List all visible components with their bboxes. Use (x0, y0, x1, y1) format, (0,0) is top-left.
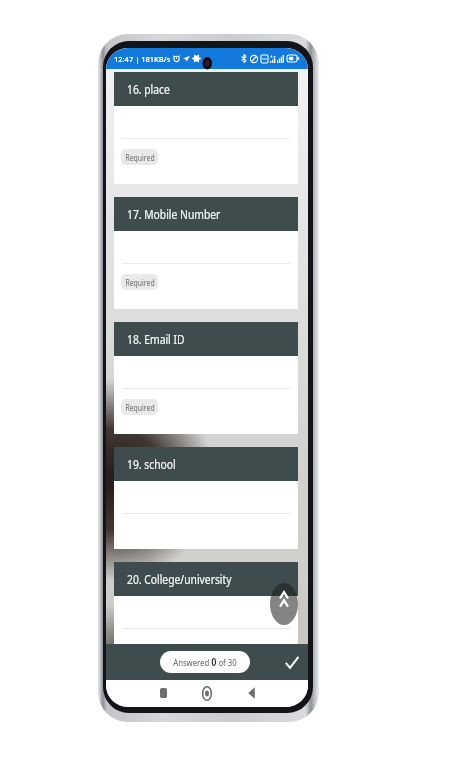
staticText: Required (125, 277, 155, 288)
button[interactable]: 19. school (114, 447, 298, 549)
button[interactable]: 18. Email ID (114, 322, 298, 434)
button[interactable]: Recents (150, 680, 176, 706)
staticText: Required (125, 152, 155, 163)
button[interactable]: Required (121, 274, 158, 290)
button[interactable]: Answered 0 of 30 (160, 651, 250, 673)
staticText: 16. place (127, 81, 170, 97)
button[interactable]: 16. place (114, 72, 298, 184)
staticText: 12:47 | 181KB/s (114, 54, 171, 64)
button[interactable]: Required (121, 399, 158, 415)
button[interactable]: Required (121, 149, 158, 165)
staticText: 18. Email ID (127, 331, 185, 347)
button[interactable]: 17. Mobile Number (114, 197, 298, 309)
button[interactable]: Submit (278, 648, 306, 676)
button[interactable]: 20. College/university (114, 562, 298, 644)
button[interactable]: Home (194, 680, 220, 706)
staticText: Answered 0 of 30 (173, 655, 237, 669)
staticText: 19. school (127, 456, 176, 472)
staticText: 20. College/university (127, 571, 232, 587)
button[interactable]: Back (238, 680, 264, 706)
staticText: Required (125, 402, 155, 413)
staticText: 17. Mobile Number (127, 206, 221, 222)
button[interactable]: Scroll to top (270, 583, 298, 625)
